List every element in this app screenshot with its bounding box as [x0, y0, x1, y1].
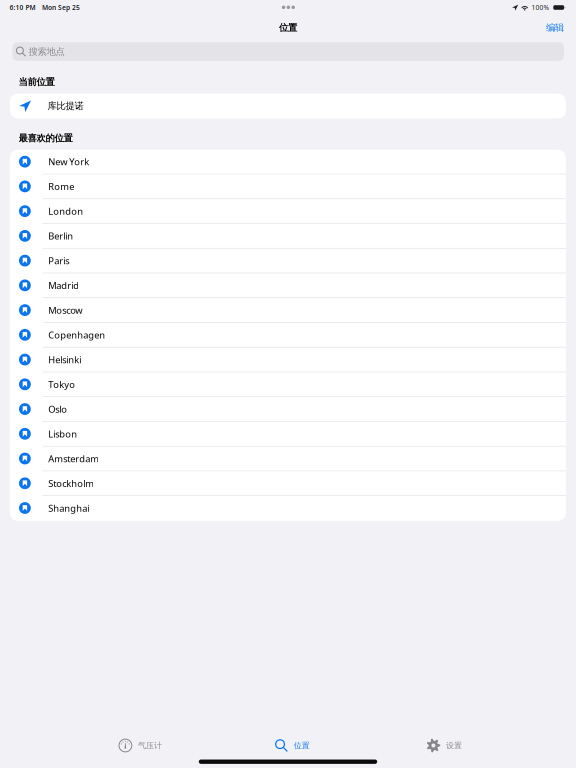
staticText: Mon Sep 25: [42, 3, 80, 12]
staticText: Paris: [48, 254, 69, 267]
staticText: Helsinki: [48, 353, 81, 366]
staticText: 100%: [531, 3, 549, 12]
button[interactable]: Paris: [10, 249, 566, 273]
staticText: 搜索地点: [29, 46, 65, 57]
staticText: 设置: [446, 741, 462, 750]
staticText: Berlin: [48, 230, 73, 242]
staticText: Moscow: [48, 304, 82, 316]
button[interactable]: Copenhagen: [10, 323, 566, 347]
staticText: 位置: [294, 741, 310, 750]
staticText: 最喜欢的位置: [19, 132, 73, 144]
button[interactable]: Berlin: [10, 224, 566, 248]
staticText: Copenhagen: [48, 329, 105, 341]
button[interactable]: 气压计: [106, 734, 174, 757]
staticText: Amsterdam: [48, 452, 99, 465]
button[interactable]: 位置: [263, 734, 322, 757]
staticText: Rome: [48, 180, 74, 193]
staticText: 库比提诺: [47, 100, 83, 112]
staticText: Oslo: [48, 403, 67, 415]
button[interactable]: Rome: [10, 174, 566, 199]
staticText: 编辑: [546, 22, 564, 33]
staticText: Tokyo: [48, 378, 75, 390]
button[interactable]: Lisbon: [10, 422, 566, 446]
button[interactable]: Shanghai: [10, 496, 566, 521]
button[interactable]: Amsterdam: [10, 446, 566, 471]
staticText: Stockholm: [48, 477, 94, 489]
staticText: 6:10 PM: [9, 3, 35, 12]
button[interactable]: Oslo: [10, 397, 566, 422]
button[interactable]: Madrid: [10, 273, 566, 298]
staticText: Shanghai: [48, 502, 89, 514]
staticText: 位置: [279, 22, 297, 33]
button[interactable]: Moscow: [10, 298, 566, 323]
staticText: London: [48, 205, 83, 217]
button[interactable]: London: [10, 199, 566, 224]
button[interactable]: 设置: [414, 734, 474, 757]
button[interactable]: 编辑: [541, 18, 569, 37]
button[interactable]: 搜索地点: [12, 42, 564, 61]
staticText: 当前位置: [19, 76, 55, 88]
button[interactable]: Stockholm: [10, 471, 566, 496]
button[interactable]: 库比提诺: [10, 93, 566, 118]
staticText: New York: [48, 155, 89, 168]
staticText: Madrid: [48, 279, 79, 292]
button[interactable]: New York: [10, 150, 566, 174]
button[interactable]: Helsinki: [10, 347, 566, 372]
button[interactable]: Tokyo: [10, 372, 566, 397]
staticText: Lisbon: [48, 428, 77, 440]
staticText: 气压计: [138, 741, 162, 750]
